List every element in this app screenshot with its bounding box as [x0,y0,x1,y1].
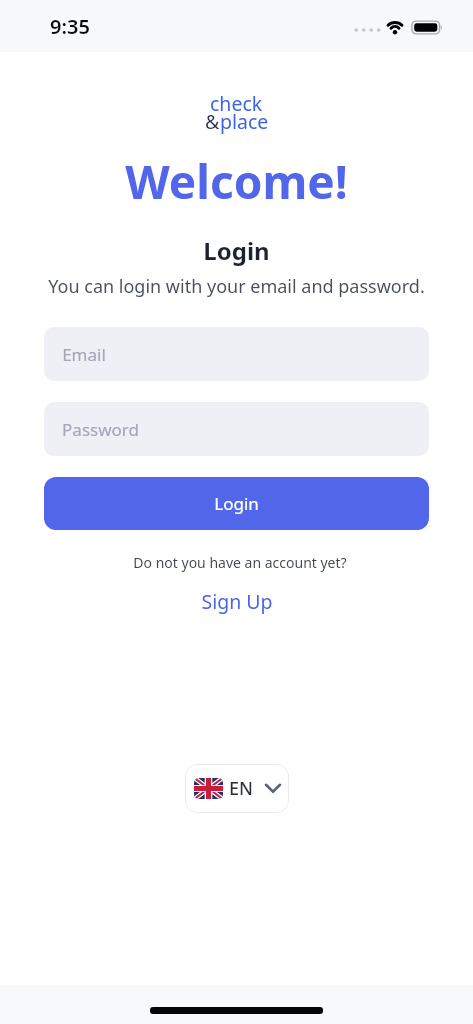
staticText: check [210,90,263,117]
button[interactable]: Password [44,402,429,456]
staticText: Welcome! [125,150,348,213]
staticText: Do not you have an account yet? [133,553,347,572]
staticText: You can login with your email and passwo… [48,274,425,299]
button[interactable]: Email [44,327,429,381]
staticText: Sign Up [201,588,273,615]
staticText: place [220,108,269,135]
button[interactable]: Login [44,477,429,530]
staticText: Email [62,343,106,366]
staticText: Login [203,234,270,267]
staticText: EN [229,776,253,801]
staticText: Login [214,492,259,515]
button[interactable]: EN [185,764,289,813]
staticText: & [205,108,220,135]
button[interactable]: Sign Up [201,588,273,615]
staticText: 9:35 [50,13,90,40]
staticText: Password [62,418,139,441]
